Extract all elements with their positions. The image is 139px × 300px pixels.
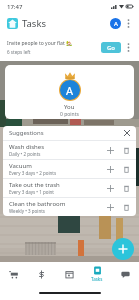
button[interactable]: Delete Take out the trash	[120, 182, 133, 195]
button[interactable]: Shopping list	[0, 262, 27, 286]
staticText: Tasks	[22, 17, 47, 30]
staticText: Invite people to your flat 🏡	[7, 40, 73, 47]
staticText: A	[114, 20, 118, 28]
button[interactable]: Clean the bathroom	[3, 198, 136, 216]
staticText: Daily • 2 points	[9, 151, 41, 157]
button[interactable]: Go	[101, 42, 121, 53]
button[interactable]: Account	[110, 18, 121, 29]
button[interactable]: Calendar	[55, 262, 83, 286]
staticText: Tasks	[91, 276, 103, 282]
button[interactable]: More options	[121, 16, 135, 30]
button[interactable]: Add Clean the bathroom	[104, 201, 117, 214]
button[interactable]: Chat	[111, 262, 139, 286]
staticText: 17:47	[7, 3, 23, 11]
button[interactable]: Delete Vacuum	[120, 163, 133, 176]
button[interactable]: Take out the trash	[3, 179, 136, 197]
button[interactable]: Expenses	[27, 262, 55, 286]
button[interactable]: Close suggestions	[121, 127, 133, 139]
button[interactable]: Add Take out the trash	[104, 182, 117, 195]
staticText: Go	[107, 44, 116, 52]
staticText: You	[64, 103, 75, 111]
staticText: A	[66, 83, 74, 98]
button[interactable]: Tasks	[83, 262, 111, 286]
button[interactable]: Banner options	[121, 40, 135, 54]
button[interactable]: Add Wash dishes	[104, 144, 117, 157]
staticText: Vacuum	[9, 162, 32, 170]
staticText: 0 points	[60, 111, 79, 118]
staticText: Wash dishes	[9, 143, 45, 151]
staticText: Every 3 days • 2 points	[9, 170, 57, 176]
button[interactable]: Wash dishes	[3, 141, 136, 159]
button[interactable]: Delete Wash dishes	[120, 144, 133, 157]
button[interactable]: Delete Clean the bathroom	[120, 201, 133, 214]
staticText: Suggestions	[9, 129, 44, 137]
staticText: Weekly • 3 points	[9, 208, 46, 214]
button[interactable]: Add task	[112, 238, 134, 260]
button[interactable]: Vacuum	[3, 160, 136, 178]
staticText: Clean the bathroom	[9, 200, 66, 208]
staticText: 6 steps left	[7, 49, 31, 55]
button[interactable]: Add Vacuum	[104, 163, 117, 176]
staticText: Take out the trash	[9, 181, 60, 189]
staticText: Every 3 days • 1 point	[9, 189, 54, 195]
